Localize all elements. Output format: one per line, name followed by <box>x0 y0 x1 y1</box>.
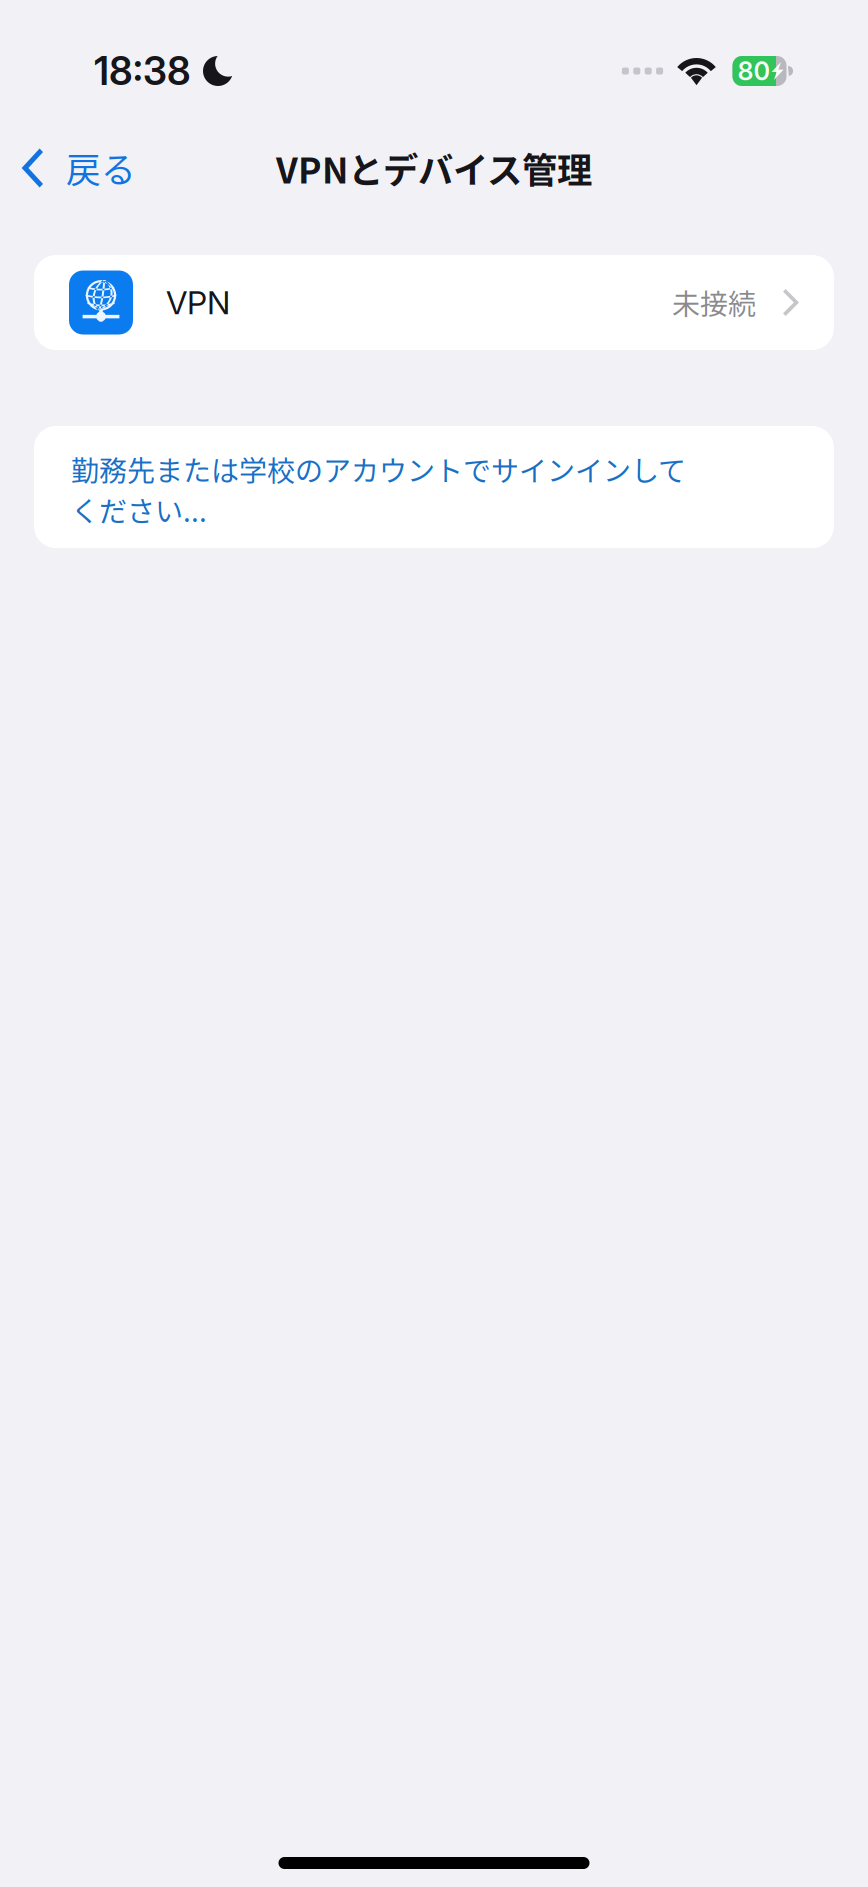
staticText: 18:38 <box>94 48 191 94</box>
staticText: 80 <box>737 56 770 86</box>
staticText: 未接続 <box>672 282 756 323</box>
button[interactable]: 戻る <box>0 130 160 206</box>
staticText: VPNとデバイス管理 <box>276 142 592 194</box>
staticText: 勤務先または学校のアカウントでサインインしてください... <box>71 449 686 530</box>
staticText: 戻る <box>66 143 136 193</box>
staticText: VPN <box>166 283 230 322</box>
button[interactable]: VPN <box>34 255 834 350</box>
button[interactable]: 勤務先または学校のアカウントでサインインしてください... <box>34 426 834 548</box>
